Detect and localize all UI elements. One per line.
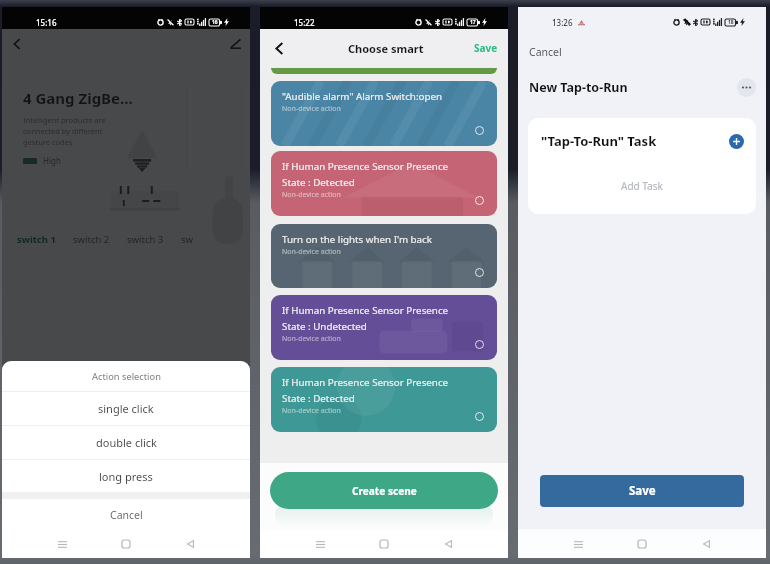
button[interactable]: Home bbox=[114, 532, 138, 556]
staticText: 4 Gang ZigBe… bbox=[23, 88, 133, 108]
button[interactable]: Home bbox=[372, 532, 396, 556]
staticText: 15:22 bbox=[294, 17, 315, 28]
staticText: double click bbox=[96, 435, 157, 450]
staticText: "Tap-To-Run" Task bbox=[541, 132, 657, 150]
button[interactable]: Edit bbox=[221, 29, 250, 58]
staticText: switch 2 bbox=[73, 233, 110, 246]
staticText: 17 bbox=[470, 19, 476, 26]
staticText: switch 1 bbox=[17, 233, 56, 246]
staticText: long press bbox=[99, 469, 153, 484]
button[interactable]: If Human Presence Sensor Presence State … bbox=[271, 295, 497, 360]
button[interactable]: Cancel bbox=[529, 29, 562, 74]
button[interactable]: Home bbox=[114, 532, 138, 556]
button[interactable]: Save bbox=[540, 475, 744, 507]
button[interactable]: If Human Presence Sensor Presence State … bbox=[271, 151, 497, 216]
staticText: sw bbox=[181, 233, 194, 246]
staticText: If Human Presence Sensor Presence State … bbox=[282, 304, 449, 333]
staticText: 18 bbox=[728, 19, 734, 26]
button[interactable]: Cancel bbox=[2, 499, 250, 530]
button[interactable]: single click bbox=[2, 392, 250, 425]
staticText: Non-device action bbox=[282, 334, 341, 344]
button[interactable]: Save bbox=[474, 41, 498, 55]
button[interactable]: Home bbox=[630, 532, 654, 556]
button[interactable]: Back bbox=[178, 532, 202, 556]
staticText: Choose smart bbox=[348, 41, 424, 56]
staticText: "Audible alarm" Alarm Switch:open bbox=[282, 90, 443, 103]
button[interactable]: Back bbox=[178, 532, 202, 556]
staticText: single click bbox=[98, 401, 154, 416]
staticText: Save bbox=[474, 41, 498, 55]
button[interactable]: Back bbox=[436, 532, 460, 556]
staticText: Cancel bbox=[529, 45, 562, 59]
button[interactable]: Turn on the lights when I'm back bbox=[271, 224, 497, 288]
button[interactable]: More options bbox=[737, 78, 756, 97]
staticText: Turn on the lights when I'm back bbox=[282, 233, 433, 246]
staticText: Cancel bbox=[110, 508, 143, 522]
button[interactable]: double click bbox=[2, 426, 250, 459]
button[interactable]: Create scene bbox=[270, 472, 498, 509]
staticText: Non-device action bbox=[282, 247, 341, 257]
button[interactable]: Back bbox=[694, 532, 718, 556]
staticText: Save bbox=[629, 483, 656, 499]
button[interactable]: If Human Presence Sensor Presence State … bbox=[271, 367, 497, 432]
staticText: Action selection bbox=[92, 370, 161, 383]
staticText: New Tap-to-Run bbox=[529, 79, 628, 96]
staticText: Add Task bbox=[621, 179, 663, 193]
staticText: 15:16 bbox=[36, 17, 57, 28]
button[interactable]: "Audible alarm" Alarm Switch:open bbox=[271, 81, 497, 146]
staticText: Non-device action bbox=[282, 406, 341, 416]
staticText: switch 3 bbox=[127, 233, 164, 246]
button[interactable]: Recents bbox=[308, 532, 332, 556]
staticText: Non-device action bbox=[282, 190, 341, 200]
staticText: If Human Presence Sensor Presence State … bbox=[282, 160, 449, 189]
staticText: Intelligent products are connected by di… bbox=[23, 115, 106, 147]
button[interactable]: long press bbox=[2, 460, 250, 492]
staticText: Non-device action bbox=[282, 104, 341, 114]
button[interactable]: Recents bbox=[566, 532, 590, 556]
staticText: 13:26 bbox=[552, 17, 573, 28]
button[interactable]: Back bbox=[260, 29, 298, 67]
staticText: Create scene bbox=[352, 484, 417, 498]
button[interactable]: Back bbox=[2, 29, 31, 58]
staticText: 16 bbox=[212, 19, 218, 26]
staticText: High bbox=[43, 155, 61, 166]
button[interactable]: Add bbox=[729, 134, 744, 149]
button[interactable]: Recents bbox=[50, 532, 74, 556]
staticText: If Human Presence Sensor Presence State … bbox=[282, 376, 449, 405]
button[interactable]: Recents bbox=[50, 532, 74, 556]
